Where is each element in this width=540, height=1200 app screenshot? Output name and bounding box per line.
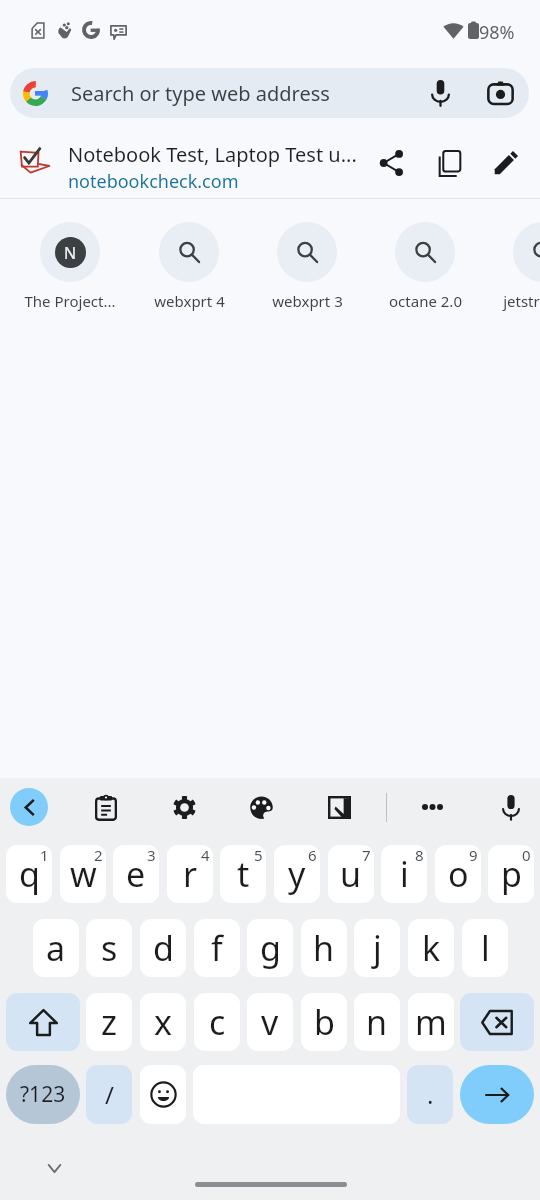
staticText: r [183, 851, 198, 897]
staticText: ?123 [20, 1080, 66, 1109]
button[interactable]: Edit [481, 138, 531, 188]
staticText: m [415, 999, 447, 1045]
button[interactable]: Settings [164, 787, 204, 827]
staticText: q [19, 851, 40, 897]
button[interactable]: Hide keyboard [42, 1156, 66, 1180]
button[interactable]: webxprt 3 [248, 205, 366, 315]
button[interactable]: k [408, 919, 454, 977]
staticText: t [237, 851, 250, 897]
button[interactable]: s [86, 919, 132, 977]
button[interactable]: N [11, 205, 129, 315]
button[interactable]: Voice search [417, 70, 463, 116]
staticText: 1 [40, 845, 49, 865]
button[interactable]: jetstream 2 [484, 205, 540, 315]
button[interactable]: i [381, 845, 427, 903]
button[interactable]: Resize [319, 787, 359, 827]
button[interactable]: Copy [425, 138, 475, 188]
staticText: Search or type web address [71, 80, 330, 107]
button[interactable]: j [354, 919, 400, 977]
staticText: x [154, 999, 172, 1045]
staticText: p [501, 851, 522, 897]
button[interactable]: w [60, 845, 106, 903]
button[interactable]: r [167, 845, 213, 903]
staticText: N [64, 242, 77, 264]
button[interactable]: Themes [241, 787, 281, 827]
button[interactable]: webxprt 4 [130, 205, 248, 315]
button[interactable]: m [408, 993, 454, 1051]
button[interactable]: / [86, 1065, 132, 1124]
staticText: l [481, 925, 490, 971]
staticText: / [105, 1078, 114, 1111]
staticText: octane 2.0 [389, 291, 462, 311]
button[interactable]: x [140, 993, 186, 1051]
staticText: y [288, 851, 306, 897]
button[interactable]: Search by image [477, 70, 523, 116]
button[interactable]: v [247, 993, 293, 1051]
staticText: v [261, 999, 279, 1045]
staticText: s [101, 925, 118, 971]
button[interactable]: l [462, 919, 508, 977]
staticText: 3 [147, 845, 156, 865]
staticText: 6 [308, 845, 317, 865]
button[interactable]: t [220, 845, 266, 903]
staticText: 5 [254, 845, 263, 865]
button[interactable]: Notebook Test, Laptop Test u... [0, 128, 540, 198]
button[interactable]: Back [10, 788, 48, 826]
staticText: u [340, 851, 362, 897]
button[interactable]: o [435, 845, 481, 903]
button[interactable]: y [274, 845, 320, 903]
staticText: 2 [94, 845, 103, 865]
staticText: a [46, 925, 66, 971]
staticText: d [153, 925, 174, 971]
staticText: 7 [362, 845, 371, 865]
button[interactable]: Backspace [460, 993, 534, 1051]
button[interactable]: Emoji [140, 1065, 186, 1124]
staticText: jetstream 2 [503, 291, 540, 311]
button[interactable]: u [328, 845, 374, 903]
staticText: 4 [201, 845, 210, 865]
button[interactable]: p [488, 845, 534, 903]
staticText: 9 [469, 845, 478, 865]
button[interactable]: More options [412, 787, 452, 827]
staticText: 0 [522, 845, 531, 865]
button[interactable]: b [301, 993, 347, 1051]
button[interactable]: Enter [460, 1065, 534, 1124]
button[interactable]: Voice input [491, 787, 531, 827]
staticText: w [70, 851, 97, 897]
staticText: . [427, 1078, 434, 1111]
staticText: webxprt 4 [154, 291, 225, 311]
staticText: The Project... [24, 291, 116, 311]
button[interactable]: . [407, 1065, 453, 1124]
staticText: 8 [415, 845, 424, 865]
staticText: c [209, 999, 226, 1045]
button[interactable]: d [140, 919, 186, 977]
button[interactable]: e [113, 845, 159, 903]
button[interactable]: ?123 [6, 1065, 80, 1124]
staticText: notebookcheck.com [68, 169, 239, 194]
button[interactable]: q [6, 845, 52, 903]
staticText: g [260, 925, 281, 971]
staticText: n [366, 999, 388, 1045]
staticText: h [313, 925, 335, 971]
staticText: f [211, 925, 223, 971]
button[interactable]: Search or type web address [10, 68, 529, 118]
staticText: b [314, 999, 335, 1045]
button[interactable]: Clipboard [86, 787, 126, 827]
button[interactable]: g [247, 919, 293, 977]
button[interactable]: a [33, 919, 79, 977]
button[interactable]: Share [366, 138, 416, 188]
staticText: z [101, 999, 117, 1045]
staticText: 98% [479, 20, 515, 45]
button[interactable]: f [194, 919, 240, 977]
staticText: Notebook Test, Laptop Test u... [68, 141, 357, 168]
staticText: o [448, 851, 469, 897]
button[interactable]: h [301, 919, 347, 977]
button[interactable]: c [194, 993, 240, 1051]
button[interactable]: octane 2.0 [366, 205, 484, 315]
button[interactable]: z [86, 993, 132, 1051]
button[interactable]: Shift [6, 993, 80, 1051]
button[interactable]: n [354, 993, 400, 1051]
staticText: i [400, 851, 409, 897]
staticText: webxprt 3 [272, 291, 343, 311]
